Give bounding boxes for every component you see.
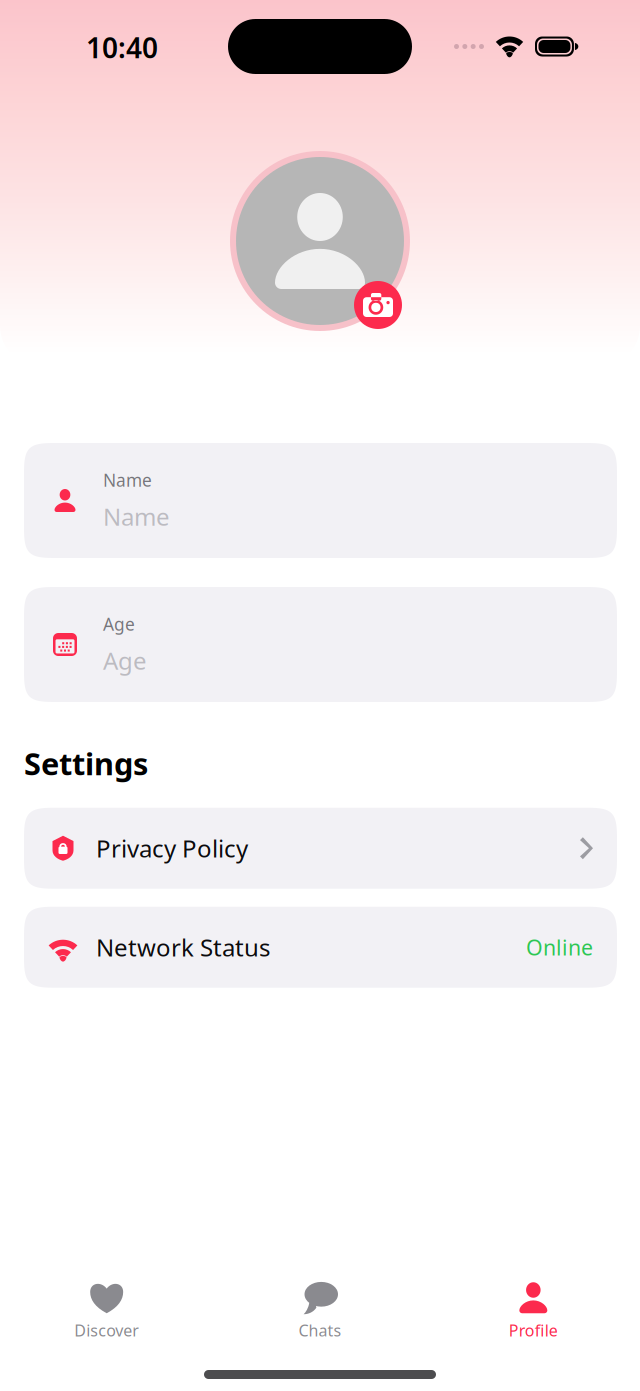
staticText: Age (103, 645, 147, 676)
staticText: Profile (509, 1320, 558, 1341)
staticText: Settings (24, 743, 148, 784)
staticText: Online (526, 933, 593, 961)
button[interactable]: Network Status (24, 907, 617, 988)
staticText: 10:40 (86, 29, 158, 66)
button[interactable]: Profile (427, 1282, 640, 1341)
staticText: Name (103, 469, 152, 492)
staticText: Discover (74, 1320, 139, 1341)
button[interactable]: Privacy Policy (24, 808, 617, 889)
button[interactable]: Change profile photo (354, 281, 402, 329)
button[interactable]: Chats (213, 1282, 427, 1341)
staticText: Name (103, 501, 170, 532)
staticText: Chats (298, 1320, 341, 1341)
button[interactable]: Discover (0, 1282, 213, 1341)
staticText: Network Status (96, 931, 270, 963)
staticText: Age (103, 613, 135, 636)
staticText: Privacy Policy (96, 832, 248, 864)
